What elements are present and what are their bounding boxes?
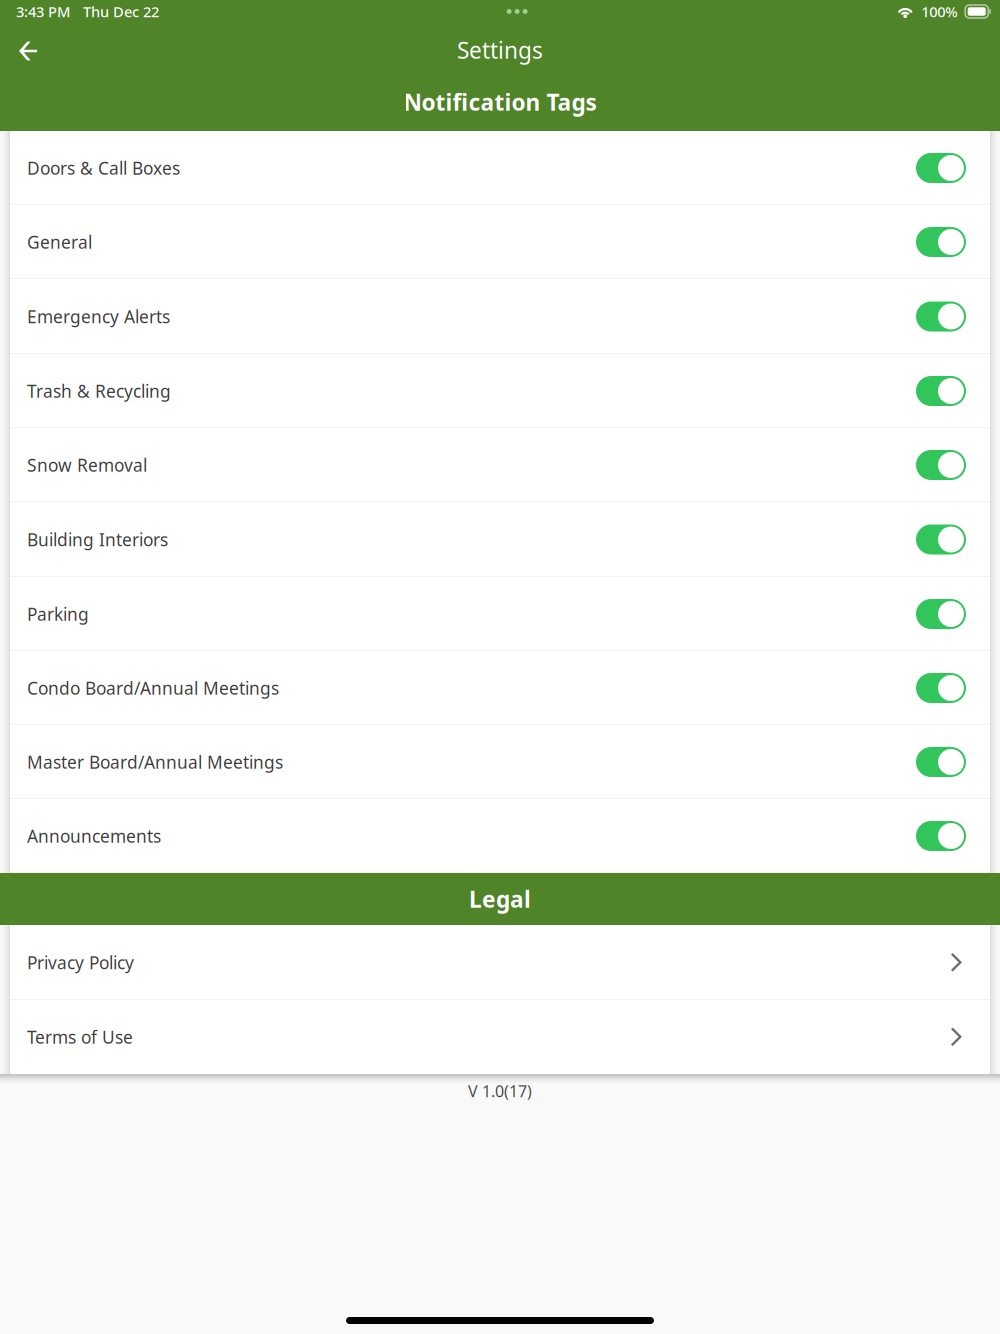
staticText: Doors & Call Boxes xyxy=(27,156,180,179)
staticText: Notification Tags xyxy=(403,87,596,117)
button[interactable]: Master Board/Annual Meetings xyxy=(10,725,990,799)
staticText: Legal xyxy=(469,884,531,914)
button[interactable]: Parking xyxy=(10,577,990,651)
button[interactable]: Back xyxy=(0,23,56,77)
staticText: Snow Removal xyxy=(27,453,147,476)
button[interactable]: Building Interiors xyxy=(10,502,990,577)
staticText: Trash & Recycling xyxy=(27,379,171,402)
staticText: Building Interiors xyxy=(27,528,168,551)
button[interactable]: Terms of Use xyxy=(10,1000,990,1074)
button[interactable]: Trash & Recycling xyxy=(10,354,990,428)
staticText: 100% xyxy=(921,2,957,21)
staticText: Settings xyxy=(457,35,543,65)
button[interactable]: Condo Board/Annual Meetings xyxy=(10,651,990,725)
button[interactable]: Snow Removal xyxy=(10,428,990,502)
staticText: Privacy Policy xyxy=(27,951,134,974)
staticText: Master Board/Annual Meetings xyxy=(27,750,283,773)
staticText: 3:43 PM xyxy=(16,2,70,21)
staticText: Terms of Use xyxy=(27,1025,133,1048)
staticText: Condo Board/Annual Meetings xyxy=(27,676,279,699)
staticText: General xyxy=(27,230,92,253)
button[interactable]: Emergency Alerts xyxy=(10,279,990,354)
staticText: Parking xyxy=(27,602,89,625)
button[interactable]: General xyxy=(10,205,990,279)
button[interactable]: Doors & Call Boxes xyxy=(10,131,990,205)
staticText: Emergency Alerts xyxy=(27,305,170,328)
staticText: Thu Dec 22 xyxy=(83,2,159,21)
staticText: Announcements xyxy=(27,824,161,847)
staticText: V 1.0(17) xyxy=(468,1080,532,1102)
button[interactable]: Privacy Policy xyxy=(10,925,990,1000)
button[interactable]: Announcements xyxy=(10,799,990,873)
